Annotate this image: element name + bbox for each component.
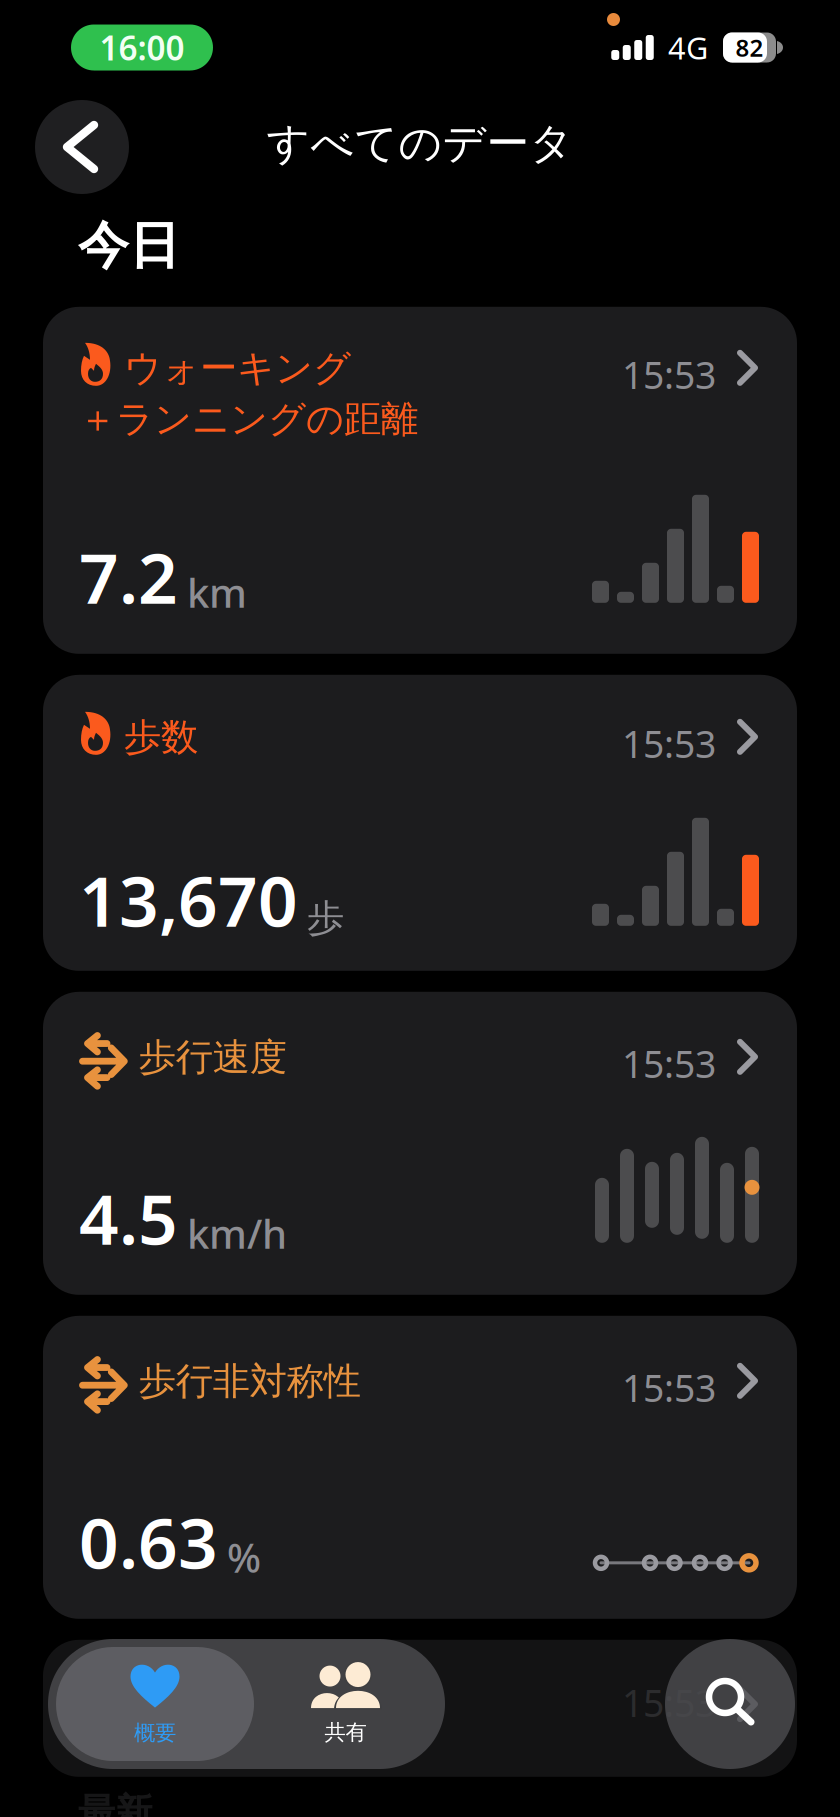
button[interactable]: 概要 [56,1647,254,1761]
staticText: 歩数 [124,714,198,761]
staticText: ＋ランニングの距離 [79,396,418,443]
button[interactable]: ウォーキング [43,307,797,654]
staticText: 13,670 [79,854,298,946]
staticText: ウォーキング [124,345,351,392]
staticText: 共有 [324,1719,366,1746]
button[interactable]: 歩数 [43,675,797,971]
staticText: % [227,1531,261,1584]
staticText: 82 [735,32,763,63]
staticText: 15:53 [622,1039,716,1088]
staticText: 最新 [78,1789,152,1817]
staticText: 歩行非対称性 [139,1358,361,1405]
button[interactable]: 歩行非対称性 [43,1316,797,1619]
staticText: 4G [668,27,708,68]
staticText: すべてのデータ [266,117,573,170]
button[interactable]: 戻る [35,100,129,194]
button[interactable]: 歩行速度 [43,992,797,1295]
staticText: 0.63 [79,1496,218,1588]
staticText: 7.2 [79,531,178,623]
staticText: 15:53 [622,1678,716,1727]
staticText: 15:53 [622,719,716,768]
staticText: km/h [187,1207,287,1260]
staticText: 15:53 [622,1363,716,1412]
staticText: 15:53 [622,350,716,399]
staticText: 概要 [134,1720,176,1746]
button[interactable]: 共有 [254,1647,437,1761]
staticText: km [187,566,247,619]
staticText: 16:00 [99,25,184,70]
button[interactable]: 検索 [665,1639,795,1769]
staticText: 歩行速度 [139,1034,287,1081]
staticText: 今日 [78,214,180,278]
staticText: 歩 [307,895,344,942]
staticText: 4.5 [79,1172,178,1264]
